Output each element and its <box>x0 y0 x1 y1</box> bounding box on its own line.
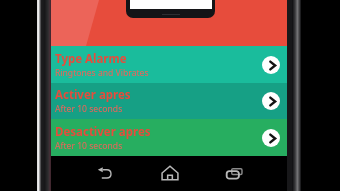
staticText: After 10 seconds <box>55 140 123 152</box>
button[interactable]: Type Alarme <box>51 46 287 83</box>
button[interactable]: Open Activer apres <box>262 92 280 110</box>
button[interactable]: Open Desactiver apres <box>262 129 280 147</box>
staticText: Type Alarme <box>55 51 127 67</box>
staticText: After 10 seconds <box>55 103 123 115</box>
button[interactable]: Activer apres <box>51 83 287 119</box>
button[interactable]: Home <box>160 163 180 183</box>
staticText: Ringtones and Vibrates <box>55 67 149 79</box>
staticText: Desactiver apres <box>55 124 151 140</box>
button[interactable]: Desactiver apres <box>51 119 287 156</box>
staticText: Activer apres <box>55 87 131 103</box>
button[interactable]: Open Type Alarme <box>262 56 280 74</box>
button[interactable]: Recents <box>224 163 244 183</box>
button[interactable]: Back <box>95 163 115 183</box>
